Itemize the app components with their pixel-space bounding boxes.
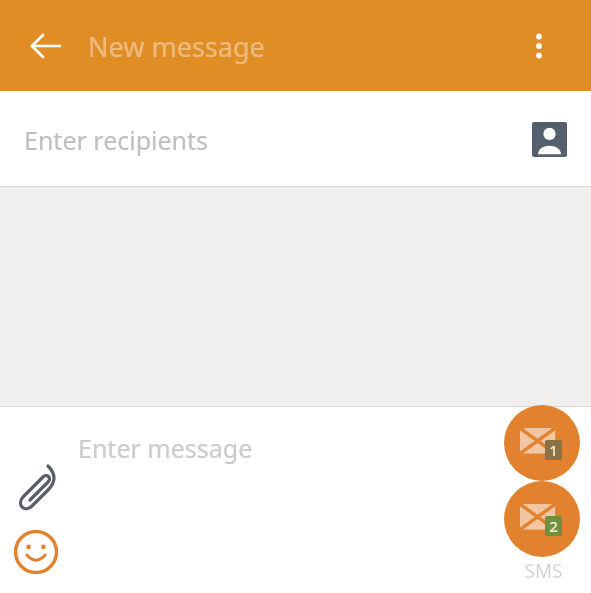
staticText: 2 xyxy=(549,516,558,536)
staticText: 1 xyxy=(549,440,558,460)
button[interactable]: Back xyxy=(22,22,70,70)
staticText: Enter message xyxy=(78,431,253,465)
staticText: New message xyxy=(88,28,265,65)
button[interactable]: Send message, slot 2 xyxy=(504,481,580,557)
button[interactable]: Send message, slot 1 xyxy=(504,405,580,481)
staticText: Enter recipients xyxy=(24,123,209,157)
button[interactable]: Enter recipients xyxy=(0,91,591,186)
button[interactable]: Pick contact xyxy=(527,117,571,161)
button[interactable]: Attach xyxy=(12,456,64,508)
button[interactable]: Insert emoji xyxy=(13,529,59,575)
staticText: SMS xyxy=(524,558,563,584)
button[interactable]: More options xyxy=(515,22,563,70)
